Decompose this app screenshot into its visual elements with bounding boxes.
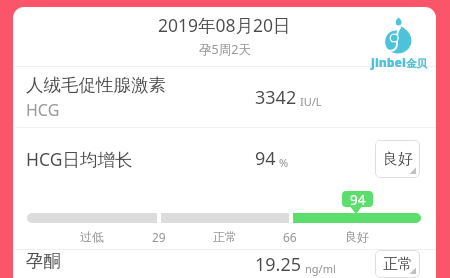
staticText: jinbei xyxy=(371,54,406,70)
button[interactable]: 人绒毛促性腺激素 xyxy=(13,67,436,127)
staticText: 19.25 xyxy=(255,252,302,277)
staticText: 94 xyxy=(255,146,276,171)
staticText: 94 xyxy=(350,191,366,207)
staticText: 正常 xyxy=(213,229,237,244)
staticText: HCG日均增长 xyxy=(26,147,133,171)
staticText: 29 xyxy=(152,229,166,245)
staticText: 3342 xyxy=(255,85,297,110)
staticText: 66 xyxy=(283,229,297,245)
other: Jinbei logo xyxy=(367,9,431,73)
staticText: 正常 xyxy=(383,255,413,274)
staticText: 良好 xyxy=(345,229,369,244)
staticText: % xyxy=(279,155,289,170)
staticText: 良好 xyxy=(383,150,413,169)
staticText: ng/ml xyxy=(305,261,336,276)
staticText: 孕5周2天 xyxy=(199,41,251,58)
staticText: IU/L xyxy=(300,94,322,109)
button[interactable]: 正常 xyxy=(375,250,420,278)
staticText: 过低 xyxy=(80,229,104,244)
button[interactable]: 孕酮 xyxy=(13,250,436,278)
staticText: 人绒毛促性腺激素 xyxy=(26,74,166,96)
staticText: HCG xyxy=(26,99,60,121)
staticText: 金贝 xyxy=(406,57,427,70)
staticText: 2019年08月20日 xyxy=(158,13,291,37)
button[interactable]: 良好 xyxy=(375,140,420,178)
button[interactable]: HCG日均增长 xyxy=(13,128,436,189)
staticText: 孕酮 xyxy=(26,250,61,272)
